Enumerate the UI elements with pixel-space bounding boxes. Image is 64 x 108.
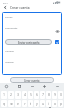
- staticText: 7: [42, 93, 44, 97]
- staticText: Enviar contraseña: [18, 41, 40, 44]
- button[interactable]: 9: [52, 91, 57, 99]
- staticText: 9: [54, 93, 56, 97]
- staticText: Crear cuenta: [10, 6, 30, 10]
- button[interactable]: i: [46, 100, 51, 107]
- staticText: 5: [30, 93, 32, 97]
- staticText: 9:41: [3, 1, 8, 4]
- button[interactable]: y: [34, 100, 39, 107]
- button[interactable]: Crear cuenta: [10, 77, 54, 83]
- staticText: 1: [3, 93, 5, 97]
- button[interactable]: t: [28, 100, 33, 107]
- button[interactable]: o: [52, 100, 57, 107]
- staticText: 3: [17, 93, 19, 97]
- staticText: 4: [24, 93, 26, 97]
- button[interactable]: Recordarme: [55, 40, 59, 44]
- staticText: y: [36, 102, 38, 106]
- button[interactable]: 5: [28, 91, 33, 99]
- staticText: e: [17, 102, 19, 106]
- staticText: o: [54, 102, 56, 106]
- staticText: p: [60, 102, 62, 106]
- staticText: 6: [36, 93, 38, 97]
- button[interactable]: Keyboard tool 1: [4, 84, 9, 89]
- button[interactable]: q: [1, 100, 7, 107]
- button[interactable]: Keyboard tool 2: [17, 84, 22, 89]
- button[interactable]: Keyboard tool 5: [55, 84, 60, 89]
- staticText: Correo: [5, 16, 13, 19]
- button[interactable]: Show password: [55, 29, 59, 33]
- button[interactable]: 1: [1, 91, 7, 99]
- button[interactable]: 4: [22, 91, 27, 99]
- staticText: i: [48, 102, 49, 106]
- staticText: Crear cuenta: [24, 79, 40, 82]
- button[interactable]: 6: [34, 91, 39, 99]
- button[interactable]: 8: [46, 91, 51, 99]
- button[interactable]: w: [8, 100, 14, 107]
- button[interactable]: 0: [58, 91, 63, 99]
- button[interactable]: 3: [15, 91, 21, 99]
- staticText: r: [24, 102, 26, 106]
- button[interactable]: 2: [8, 91, 14, 99]
- button[interactable]: u: [40, 100, 45, 107]
- button[interactable]: Keyboard tool 4: [42, 84, 47, 89]
- button[interactable]: Keyboard tool 3: [30, 84, 35, 89]
- staticText: w: [10, 102, 13, 106]
- staticText: 8: [48, 93, 50, 97]
- button[interactable]: e: [15, 100, 21, 107]
- button[interactable]: Back: [3, 5, 8, 10]
- button[interactable]: r: [22, 100, 27, 107]
- staticText: u: [42, 102, 44, 106]
- staticText: q: [3, 102, 5, 106]
- button[interactable]: Enviar contraseña: [5, 39, 52, 45]
- staticText: Apellido: [5, 61, 14, 64]
- button[interactable]: p: [58, 100, 63, 107]
- staticText: t: [30, 102, 31, 106]
- staticText: Contraseña: [5, 27, 18, 30]
- staticText: Nombre: [5, 50, 14, 53]
- staticText: 2: [10, 93, 12, 97]
- button[interactable]: 7: [40, 91, 45, 99]
- staticText: 0: [60, 93, 62, 97]
